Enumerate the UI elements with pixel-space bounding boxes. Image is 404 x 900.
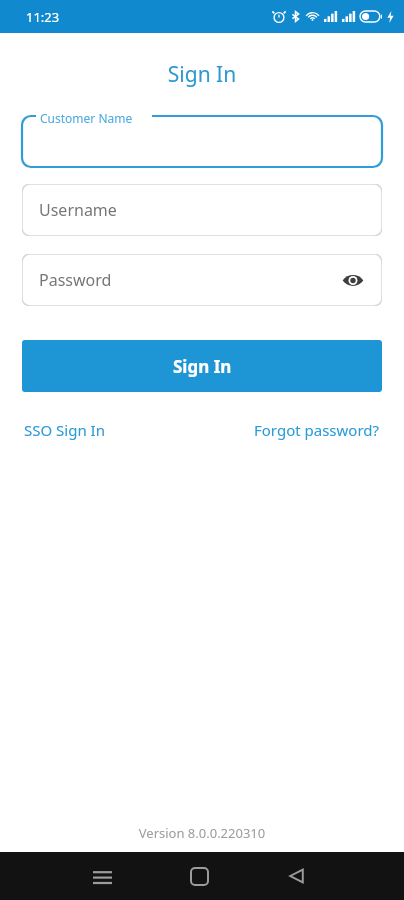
staticText: Forgot password? <box>254 420 380 440</box>
button[interactable]: Back <box>268 852 324 900</box>
button[interactable]: Sign In <box>22 340 382 392</box>
button[interactable]: Show password <box>334 261 372 299</box>
button[interactable]: Username <box>22 184 382 236</box>
staticText: Sign In <box>173 355 232 378</box>
staticText: Customer Name <box>40 110 133 126</box>
staticText: Sign In <box>0 60 404 89</box>
button[interactable]: Forgot password? <box>252 416 382 444</box>
staticText: SSO Sign In <box>24 420 105 440</box>
button[interactable]: Home <box>171 852 227 900</box>
button[interactable]: Customer Name <box>22 111 382 167</box>
staticText: Password <box>39 269 112 291</box>
button[interactable]: Recents <box>74 852 130 900</box>
staticText: Username <box>39 199 117 221</box>
staticText: 11:23 <box>26 8 60 26</box>
staticText: Version 8.0.0.220310 <box>0 824 404 842</box>
button[interactable]: SSO Sign In <box>22 416 107 444</box>
button[interactable]: Password <box>22 254 382 306</box>
